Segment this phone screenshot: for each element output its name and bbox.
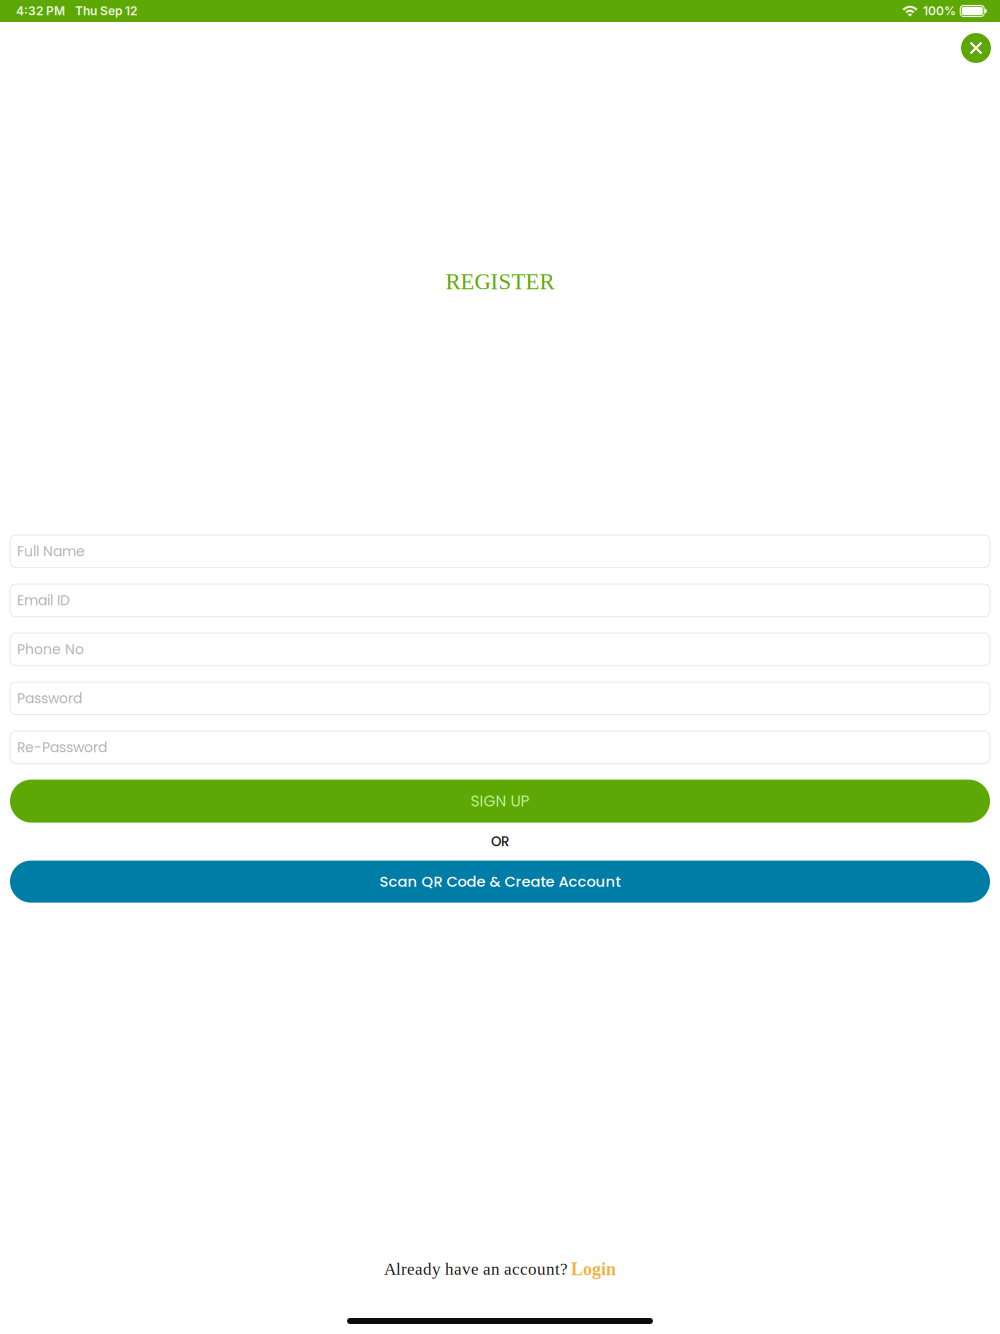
- button[interactable]: Already have an account?: [384, 1259, 616, 1279]
- staticText: Login: [571, 1259, 616, 1279]
- button[interactable]: Close: [954, 26, 998, 70]
- staticText: Password: [17, 689, 82, 708]
- staticText: Already have an account?: [384, 1260, 568, 1279]
- button[interactable]: SIGN UP: [10, 780, 990, 823]
- button[interactable]: Phone No: [10, 633, 990, 666]
- staticText: SIGN UP: [470, 790, 529, 812]
- button[interactable]: Full Name: [10, 535, 990, 568]
- staticText: 4:32 PM: [16, 4, 65, 18]
- staticText: Scan QR Code & Create Account: [379, 871, 620, 892]
- staticText: Full Name: [17, 542, 85, 561]
- button[interactable]: Email ID: [10, 584, 990, 617]
- staticText: Thu Sep 12: [75, 4, 137, 18]
- button[interactable]: Password: [10, 682, 990, 715]
- staticText: 100%: [923, 4, 956, 18]
- staticText: Phone No: [17, 640, 84, 659]
- staticText: Email ID: [17, 591, 70, 610]
- staticText: REGISTER: [445, 269, 554, 294]
- button[interactable]: Re-Password: [10, 731, 990, 764]
- staticText: Re-Password: [17, 738, 107, 757]
- staticText: OR: [491, 832, 509, 851]
- button[interactable]: Scan QR Code & Create Account: [10, 861, 990, 903]
